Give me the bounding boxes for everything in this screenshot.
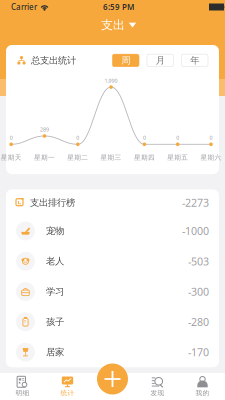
staticText: 周 [121, 55, 130, 66]
staticText: -2273 [182, 195, 209, 210]
staticText: 星期一 [34, 153, 55, 162]
button[interactable]: 孩子 [6, 307, 219, 337]
staticText: 月 [156, 55, 165, 66]
button[interactable]: 支出 [95, 15, 142, 35]
staticText: 0 [143, 134, 146, 141]
staticText: 0 [176, 134, 179, 141]
staticText: 老人 [46, 255, 64, 267]
staticText: 星期二 [67, 153, 88, 162]
button[interactable]: 居家 [6, 337, 219, 367]
staticText: 星期四 [134, 153, 155, 162]
button[interactable]: 年 [181, 54, 208, 67]
button[interactable]: 周 [112, 54, 139, 67]
staticText: 宠物 [46, 225, 64, 237]
staticText: 星期五 [167, 153, 188, 162]
staticText: 289 [40, 126, 49, 133]
staticText: 6:59 PM [103, 2, 134, 12]
staticText: 统计 [60, 389, 74, 397]
staticText: -170 [188, 345, 209, 359]
staticText: 我的 [195, 389, 209, 397]
staticText: 1,990 [105, 77, 118, 84]
staticText: 居家 [46, 346, 64, 358]
staticText: 星期天 [1, 153, 22, 162]
button[interactable]: 月 [147, 54, 173, 67]
button[interactable]: 我的 [180, 373, 225, 400]
staticText: 年 [190, 55, 199, 66]
staticText: 支出 [101, 18, 125, 32]
staticText: 星期三 [101, 153, 122, 162]
staticText: 星期六 [200, 153, 221, 162]
staticText: -280 [188, 315, 209, 329]
button[interactable]: 统计 [45, 373, 90, 400]
staticText: Carrier [11, 2, 37, 12]
staticText: -1000 [182, 224, 209, 238]
staticText: 支出排行榜 [30, 197, 75, 208]
staticText: 孩子 [46, 316, 64, 328]
button[interactable]: 学习 [6, 276, 219, 307]
staticText: 0 [76, 134, 79, 141]
staticText: 总支出统计 [31, 55, 76, 66]
button[interactable]: 宠物 [6, 216, 219, 246]
button[interactable]: Add [97, 363, 128, 394]
staticText: 0 [209, 134, 212, 141]
button[interactable]: 明细 [0, 373, 45, 400]
staticText: 0 [10, 134, 13, 141]
staticText: 学习 [46, 286, 64, 297]
button[interactable]: 发现 [135, 373, 180, 400]
button[interactable]: 老人 [6, 246, 219, 276]
staticText: -300 [188, 284, 209, 299]
staticText: 明细 [15, 389, 29, 397]
staticText: -503 [188, 254, 209, 268]
staticText: 发现 [150, 389, 164, 397]
